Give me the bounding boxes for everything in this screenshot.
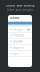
staticText: Design	[13, 28, 23, 31]
button[interactable]: Growth	[8, 39, 32, 45]
button[interactable]: Product	[8, 33, 32, 39]
staticText: Teams	[10, 16, 19, 20]
staticText: Growth	[13, 40, 23, 43]
button[interactable]: Design	[8, 27, 32, 33]
staticText: Product	[13, 34, 24, 37]
staticText: Ops	[13, 52, 18, 55]
staticText: Create Your Team(s)	[5, 4, 34, 7]
staticText: Support	[13, 46, 24, 49]
button[interactable]: Ops	[8, 51, 32, 57]
button[interactable]: Support	[8, 45, 32, 51]
staticText: Invite your people	[6, 8, 33, 12]
